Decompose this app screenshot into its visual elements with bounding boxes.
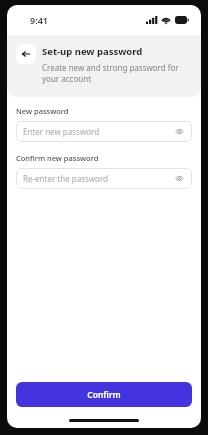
staticText: Set-up new password: [42, 45, 143, 58]
staticText: 9:41: [30, 14, 48, 26]
button[interactable]: Re-enter the password: [16, 168, 192, 189]
staticText: Create new and strong password for your …: [42, 62, 189, 85]
staticText: Confirm: [87, 389, 121, 401]
button[interactable]: Back: [16, 44, 36, 64]
staticText: Enter new password: [23, 126, 174, 137]
button[interactable]: Show password: [174, 173, 185, 184]
staticText: New password: [16, 106, 69, 116]
staticText: Confirm new password: [16, 153, 99, 163]
button[interactable]: Enter new password: [16, 121, 192, 142]
staticText: Re-enter the password: [23, 173, 174, 184]
button[interactable]: Show password: [174, 126, 185, 137]
button[interactable]: Confirm: [16, 382, 192, 407]
